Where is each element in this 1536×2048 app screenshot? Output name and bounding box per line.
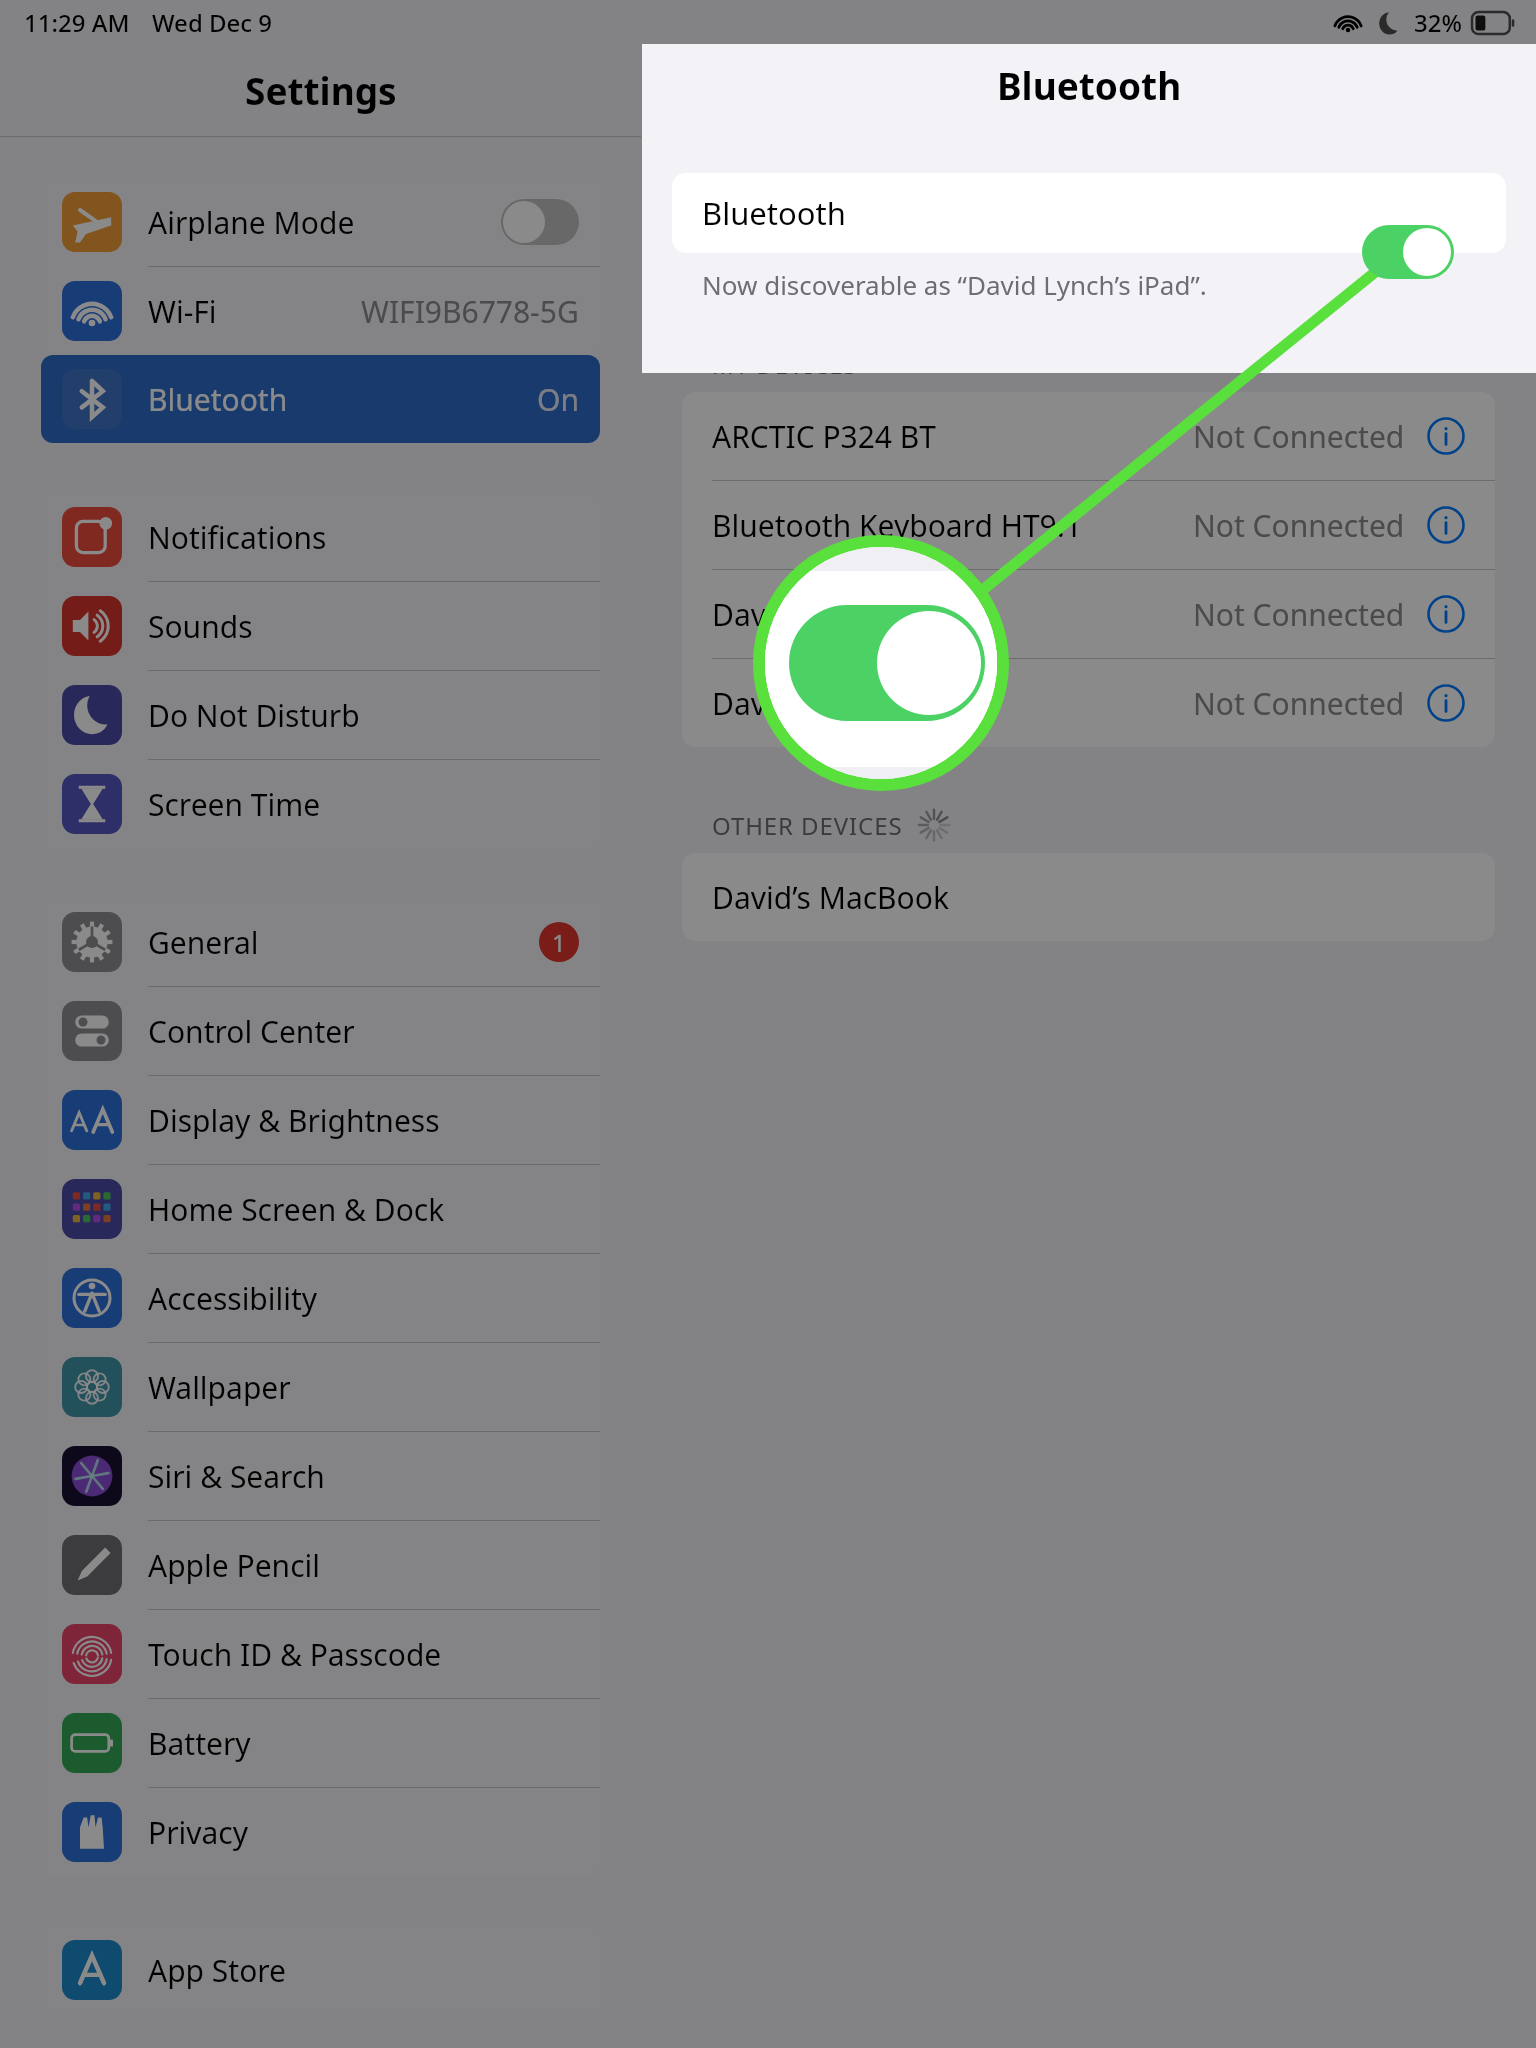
staticText: Wed Dec 9 [152,6,273,39]
staticText: Display & Brightness [148,1100,440,1141]
button[interactable]: Wallpaper [41,1343,600,1431]
button[interactable]: Control Center [41,987,600,1075]
staticText: Bluetooth Keyboard HT9.1 [712,505,1082,546]
staticText: 11:29 AM [24,6,130,39]
staticText: Touch ID & Passcode [148,1634,442,1675]
button[interactable]: Notifications [41,493,600,581]
staticText: Bluetooth [148,379,288,420]
button[interactable]: Touch ID & Passcode [41,1610,600,1698]
staticText: Accessibility [148,1278,318,1319]
staticText: WIFI9B6778-5G [361,291,579,332]
button[interactable]: General [41,898,600,986]
button[interactable]: Do Not Disturb [41,671,600,759]
staticText: On [537,379,579,420]
staticText: David Lynch’s Solo³ [712,594,980,635]
staticText: General [148,922,259,963]
staticText: Bluetooth [702,192,846,234]
button[interactable]: More info [1427,506,1465,544]
staticText: Siri & Search [148,1456,325,1497]
button[interactable]: Siri & Search [41,1432,600,1520]
staticText: Now discoverable as “David Lynch’s iPad”… [702,267,1207,302]
button[interactable]: David’s AirPods [682,659,1495,747]
staticText: Settings [245,65,397,115]
staticText: Airplane Mode [148,202,355,243]
staticText: 1 [552,926,566,959]
staticText: Control Center [148,1011,355,1052]
button[interactable]: Apple Pencil [41,1521,600,1609]
staticText: Sounds [148,606,253,647]
staticText: App Store [148,1950,287,1991]
staticText: Wallpaper [148,1367,291,1408]
button[interactable]: Bluetooth on [1373,198,1465,252]
staticText: Not Connected [1193,416,1405,457]
staticText: OTHER DEVICES [712,809,903,842]
button[interactable]: Battery [41,1699,600,1787]
button[interactable]: Bluetooth [41,355,600,443]
staticText: Screen Time [148,784,321,825]
staticText: Wi-Fi [148,291,217,332]
button[interactable]: Screen Time [41,760,600,848]
staticText: Not Connected [1193,594,1405,635]
button[interactable]: Airplane Mode [41,178,600,266]
button[interactable]: More info [1427,417,1465,455]
staticText: 32% [1414,6,1462,39]
button[interactable]: Privacy [41,1788,600,1876]
button[interactable]: ARCTIC P324 BT [682,392,1495,480]
staticText: Bluetooth [996,65,1181,115]
button[interactable] [501,199,579,245]
staticText: Apple Pencil [148,1545,321,1586]
staticText: David’s MacBook [712,877,949,918]
staticText: Now discoverable as “David Lynch’s iPad”… [712,277,1217,312]
staticText: Battery [148,1723,251,1764]
button[interactable]: Accessibility [41,1254,600,1342]
button[interactable]: Bluetooth Keyboard HT9.1 [682,481,1495,569]
button[interactable]: More info [1427,595,1465,633]
button[interactable]: Wi-Fi [41,267,600,355]
staticText: Home Screen & Dock [148,1189,445,1230]
staticText: Bluetooth [997,60,1182,110]
staticText: ARCTIC P324 BT [712,416,937,457]
button[interactable]: Home Screen & Dock [41,1165,600,1253]
staticText: Not Connected [1193,683,1405,724]
staticText: MY DEVICES [712,348,858,381]
staticText: Privacy [148,1812,249,1853]
staticText: Not Connected [1193,505,1405,546]
staticText: Notifications [148,517,327,558]
staticText: Do Not Disturb [148,695,360,736]
button[interactable]: More info [1427,684,1465,722]
button[interactable]: App Store [41,1926,600,2014]
button[interactable]: David Lynch’s Solo³ [682,570,1495,658]
button[interactable]: Sounds [41,582,600,670]
button[interactable]: Bluetooth [672,173,1506,253]
button[interactable]: Display & Brightness [41,1076,600,1164]
staticText: David’s AirPods [712,683,928,724]
button[interactable]: David’s MacBook [682,853,1495,941]
button[interactable]: Bluetooth [682,185,1495,265]
staticText: Bluetooth [712,204,856,246]
